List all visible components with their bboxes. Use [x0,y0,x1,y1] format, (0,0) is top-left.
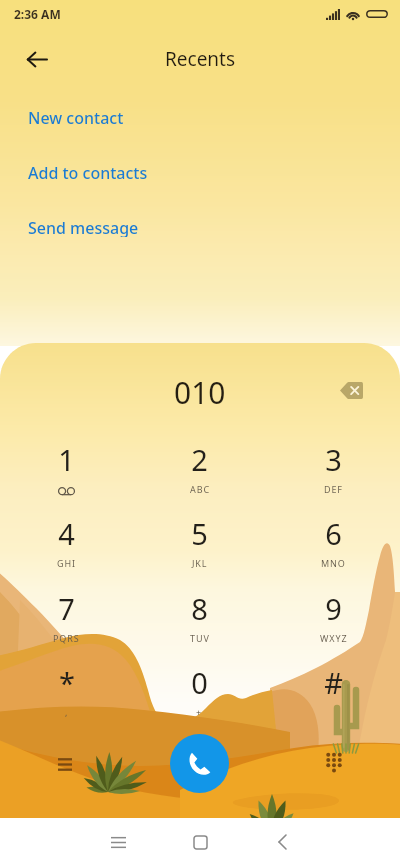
staticText: New contact [28,107,124,127]
button[interactable]: Back [16,38,58,80]
staticText: TUV [190,632,210,644]
staticText: , [65,706,69,718]
staticText: 010 [174,372,226,408]
button[interactable]: 4 [4,514,129,576]
button[interactable]: # [271,663,396,725]
button[interactable]: Recents [95,819,141,865]
button[interactable]: 6 [271,514,396,576]
staticText: WXYZ [320,632,348,644]
button[interactable]: 5 [137,514,262,576]
button[interactable]: Dialpad [310,738,358,786]
staticText: MNO [321,557,346,569]
staticText: 7 [58,589,75,625]
staticText: 3 [325,440,342,476]
button[interactable]: 0 [137,663,262,725]
button[interactable]: New contact [0,107,400,127]
button[interactable]: * [4,663,129,725]
staticText: DEF [324,483,343,495]
button[interactable]: 2 [137,440,262,502]
button[interactable]: Call [170,734,229,793]
staticText: + [196,706,203,718]
staticText: * [59,663,75,699]
button[interactable]: Home [177,819,223,865]
staticText: # [324,663,343,699]
staticText: 8 [191,589,208,625]
staticText: Send message [28,217,139,237]
staticText: 0 [191,663,208,699]
staticText: PQRS [53,632,80,644]
button[interactable]: Add to contacts [0,162,400,182]
button[interactable]: 1 [4,440,129,502]
button[interactable]: More options [41,740,89,788]
staticText: 9 [325,589,342,625]
button[interactable]: 7 [4,589,129,651]
staticText: 4 [58,514,75,550]
button[interactable]: Backspace [332,372,370,408]
button[interactable]: Send message [0,217,400,237]
staticText: Add to contacts [28,162,148,182]
button[interactable]: 8 [137,589,262,651]
staticText: Recents [165,46,236,72]
staticText: JKL [192,557,208,569]
staticText: 2 [191,440,208,476]
staticText: GHI [57,557,76,569]
staticText: 2:36 AM [14,6,61,22]
button[interactable]: 9 [271,589,396,651]
staticText: 5 [191,514,208,550]
staticText: 6 [325,514,342,550]
button[interactable]: 3 [271,440,396,502]
staticText: ABC [190,483,210,495]
button[interactable]: Back [259,819,305,865]
staticText: 1 [58,440,75,476]
